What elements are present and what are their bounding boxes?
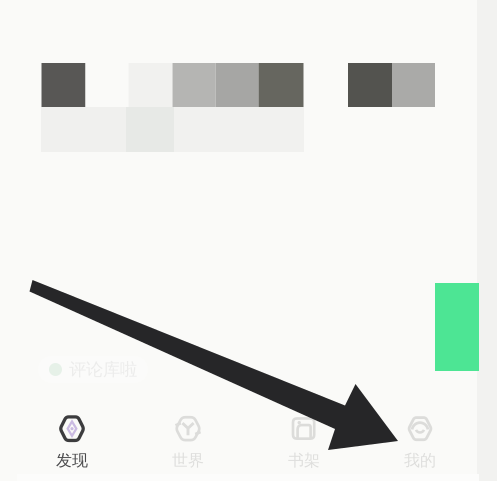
button[interactable]: 发现 bbox=[14, 406, 130, 476]
staticText: 书架 bbox=[288, 451, 320, 470]
staticText: 发现 bbox=[56, 451, 88, 470]
button[interactable]: 世界 bbox=[130, 406, 246, 476]
staticText: 评论库啦 bbox=[69, 359, 137, 380]
button[interactable]: 书架 bbox=[246, 406, 362, 476]
staticText: 世界 bbox=[172, 451, 204, 470]
button[interactable]: 我的 bbox=[362, 406, 478, 476]
staticText: 我的 bbox=[404, 451, 436, 470]
